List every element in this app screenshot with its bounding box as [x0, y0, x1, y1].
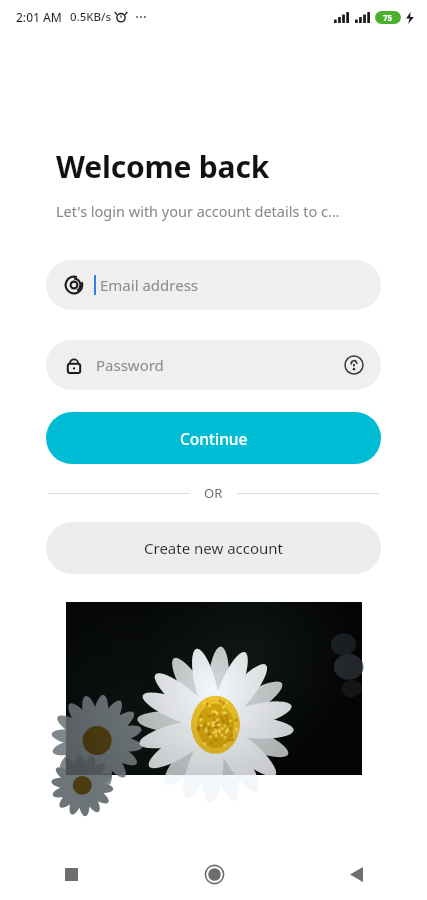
button[interactable]: Password — [46, 340, 381, 390]
staticText: Let's login with your account details to… — [56, 201, 340, 221]
button[interactable]: Recent apps — [0, 848, 143, 900]
button[interactable]: Create new account — [46, 522, 381, 574]
button[interactable]: Home — [143, 848, 285, 900]
staticText: Create new account — [144, 538, 283, 558]
staticText: OR — [204, 484, 223, 502]
staticText: Continue — [180, 428, 248, 449]
staticText: 2:01 AM — [16, 9, 62, 25]
button[interactable]: Back — [285, 848, 427, 900]
button[interactable]: Password help — [343, 354, 365, 376]
button[interactable]: Continue — [46, 412, 381, 464]
staticText: Email address — [100, 275, 365, 295]
button[interactable]: Daisy photo — [66, 602, 362, 775]
staticText: Password — [96, 355, 343, 375]
staticText: 75 — [383, 12, 393, 23]
staticText: 0.5KB/s — [70, 9, 112, 25]
button[interactable]: Email address — [46, 260, 381, 310]
staticText: Welcome back — [56, 146, 270, 187]
